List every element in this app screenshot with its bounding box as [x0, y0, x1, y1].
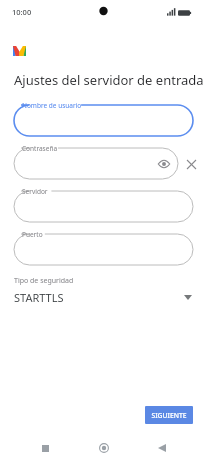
button[interactable]: Contraseña [14, 148, 178, 179]
staticText: Puerto [22, 230, 43, 239]
button[interactable]: Servidor [14, 191, 193, 222]
button[interactable]: Nombre de usuario [14, 105, 193, 136]
button[interactable]: Tipo de seguridad [0, 274, 207, 310]
staticText: Nombre de usuario [22, 101, 82, 110]
button[interactable]: Inicio [90, 434, 118, 462]
staticText: STARTTLS [14, 290, 64, 305]
button[interactable]: Mostrar contraseña [157, 157, 171, 171]
button[interactable]: Puerto [14, 234, 193, 265]
button[interactable]: Aplicaciones recientes [31, 434, 59, 462]
staticText: Servidor [22, 187, 48, 196]
staticText: SIGUIENTE [151, 411, 187, 420]
staticText: Ajustes del servidor de entrada [14, 71, 204, 89]
staticText: 10:00 [12, 7, 32, 17]
staticText: Tipo de seguridad [14, 276, 74, 286]
staticText: Contraseña [22, 144, 58, 153]
button[interactable]: SIGUIENTE [145, 406, 193, 424]
button[interactable]: Atrás [148, 434, 176, 462]
button[interactable]: Borrar [183, 156, 199, 172]
